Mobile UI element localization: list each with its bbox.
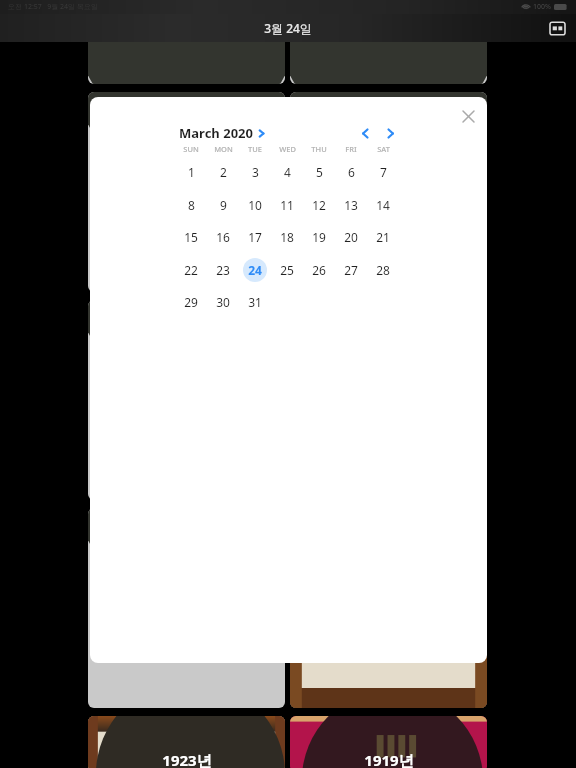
button[interactable]: 11 xyxy=(271,192,303,218)
button[interactable]: Previous month xyxy=(352,121,378,145)
staticText: 16 xyxy=(216,229,230,245)
button[interactable]: 20 xyxy=(335,224,367,250)
button[interactable]: 10 xyxy=(239,192,271,218)
staticText: 14 xyxy=(376,197,390,213)
button[interactable]: 31 xyxy=(239,289,271,315)
button[interactable]: 4 xyxy=(271,159,303,185)
button[interactable]: 25 xyxy=(271,257,303,283)
staticText: 100% xyxy=(533,2,551,12)
staticText: 31 xyxy=(248,294,262,310)
staticText: FRI xyxy=(345,144,357,154)
button[interactable]: 22 xyxy=(175,257,207,283)
button[interactable] xyxy=(290,92,487,292)
button[interactable]: 7 xyxy=(367,159,399,185)
staticText: 29 xyxy=(184,294,198,310)
button[interactable]: Calendar xyxy=(546,17,568,39)
staticText: 19 xyxy=(312,229,326,245)
staticText: 11 xyxy=(280,197,294,213)
staticText: 28 xyxy=(376,262,390,278)
button[interactable]: 14 xyxy=(367,192,399,218)
staticText: 1 xyxy=(188,164,195,180)
button[interactable] xyxy=(88,508,285,708)
staticText: 5 xyxy=(316,164,323,180)
button[interactable]: 1923년 xyxy=(88,716,285,768)
button[interactable]: 6 xyxy=(335,159,367,185)
staticText: 21 xyxy=(376,229,390,245)
button[interactable]: 1 xyxy=(175,159,207,185)
button[interactable]: March 2020 xyxy=(179,124,266,142)
button[interactable]: 29 xyxy=(175,289,207,315)
staticText: 6 xyxy=(348,164,355,180)
staticText: 24 xyxy=(248,262,262,278)
button[interactable]: 23 xyxy=(207,257,239,283)
button[interactable]: Next month xyxy=(377,121,403,145)
button[interactable]: 3 xyxy=(239,159,271,185)
staticText: 9 xyxy=(220,197,227,213)
button[interactable]: 24 xyxy=(239,257,271,283)
staticText: 오전 12:57 9월 24일 목요일 xyxy=(8,2,98,12)
button[interactable]: 28 xyxy=(367,257,399,283)
staticText: 13 xyxy=(344,197,358,213)
staticText: 20 xyxy=(344,229,358,245)
staticText: March 2020 xyxy=(179,124,253,142)
staticText: 18 xyxy=(280,229,294,245)
button[interactable]: 15 xyxy=(175,224,207,250)
button[interactable]: 9 xyxy=(207,192,239,218)
staticText: 8 xyxy=(188,197,195,213)
button[interactable]: 19 xyxy=(303,224,335,250)
button[interactable]: 12 xyxy=(303,192,335,218)
staticText: MON xyxy=(214,144,233,154)
button[interactable]: 8 xyxy=(175,192,207,218)
staticText: SAT xyxy=(377,144,390,154)
staticText: 17 xyxy=(248,229,262,245)
button[interactable]: 13 xyxy=(335,192,367,218)
staticText: 10 xyxy=(248,197,262,213)
button[interactable]: 30 xyxy=(207,289,239,315)
button[interactable]: Close xyxy=(455,103,481,129)
staticText: 15 xyxy=(184,229,198,245)
staticText: WED xyxy=(279,144,296,154)
staticText: 3월 24일 xyxy=(264,20,312,36)
button[interactable] xyxy=(88,26,285,84)
button[interactable] xyxy=(88,300,285,500)
staticText: 7 xyxy=(380,164,387,180)
staticText: 2 xyxy=(220,164,227,180)
staticText: TUE xyxy=(248,144,262,154)
button[interactable]: 17 xyxy=(239,224,271,250)
staticText: THU xyxy=(311,144,327,154)
staticText: SUN xyxy=(183,144,199,154)
staticText: 12 xyxy=(312,197,326,213)
staticText: 27 xyxy=(344,262,358,278)
button[interactable]: 27 xyxy=(335,257,367,283)
button[interactable]: 1919년 xyxy=(290,716,487,768)
staticText: 1919년 xyxy=(364,750,414,768)
button[interactable]: 21 xyxy=(367,224,399,250)
staticText: 26 xyxy=(312,262,326,278)
button[interactable] xyxy=(290,508,487,708)
staticText: 30 xyxy=(216,294,230,310)
staticText: 22 xyxy=(184,262,198,278)
button[interactable]: 16 xyxy=(207,224,239,250)
button[interactable]: 5 xyxy=(303,159,335,185)
staticText: 23 xyxy=(216,262,230,278)
staticText: 4 xyxy=(284,164,291,180)
button[interactable]: 2 xyxy=(207,159,239,185)
staticText: 1923년 xyxy=(162,750,212,768)
staticText: 25 xyxy=(280,262,294,278)
button[interactable] xyxy=(290,26,487,84)
button[interactable] xyxy=(88,92,285,292)
button[interactable]: 18 xyxy=(271,224,303,250)
button[interactable]: 26 xyxy=(303,257,335,283)
staticText: 3 xyxy=(252,164,259,180)
